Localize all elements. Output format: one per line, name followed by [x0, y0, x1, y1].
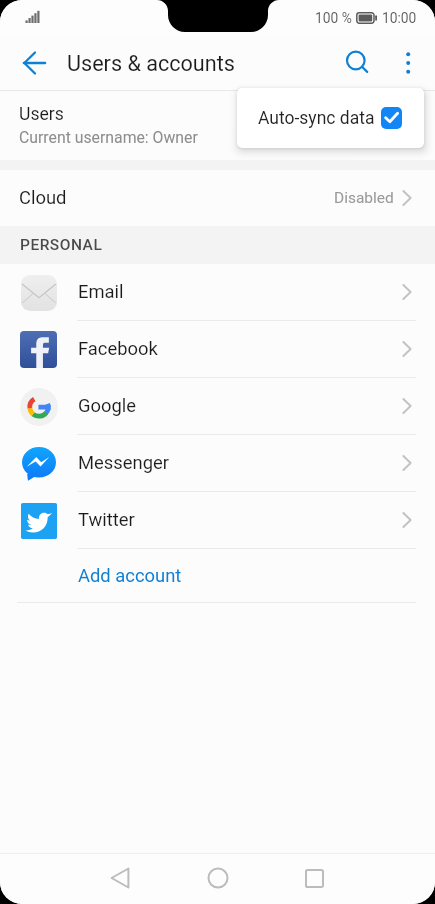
staticText: Users — [19, 104, 64, 125]
button[interactable]: Back — [10, 39, 58, 87]
staticText: Email — [78, 281, 124, 303]
button[interactable]: Add account — [0, 549, 435, 602]
staticText: Current username: Owner — [19, 128, 198, 147]
button[interactable]: Twitter — [0, 492, 435, 548]
button[interactable]: Google — [0, 378, 435, 434]
staticText: Facebook — [78, 338, 158, 360]
button[interactable]: Back — [96, 854, 144, 902]
button[interactable]: Facebook — [0, 321, 435, 377]
button[interactable]: Search — [332, 39, 380, 87]
staticText: Users & accounts — [67, 51, 235, 76]
staticText: Add account — [78, 565, 182, 587]
button[interactable]: More options — [384, 39, 432, 87]
staticText: Twitter — [78, 509, 135, 531]
button[interactable]: Home — [194, 854, 242, 902]
button[interactable]: Auto-sync data — [237, 88, 424, 148]
staticText: Google — [78, 395, 137, 417]
staticText: 100 % — [315, 10, 352, 26]
button[interactable]: Email — [0, 264, 435, 320]
staticText: Disabled — [334, 189, 394, 207]
staticText: Auto-sync data — [258, 108, 375, 129]
button[interactable]: Users — [0, 91, 435, 160]
button[interactable]: Recents — [290, 854, 338, 902]
staticText: Messenger — [78, 452, 170, 474]
button[interactable]: Messenger — [0, 435, 435, 491]
button[interactable]: Cloud — [0, 170, 435, 226]
staticText: PERSONAL — [20, 236, 103, 254]
staticText: 10:00 — [382, 10, 417, 26]
staticText: Cloud — [19, 187, 67, 209]
